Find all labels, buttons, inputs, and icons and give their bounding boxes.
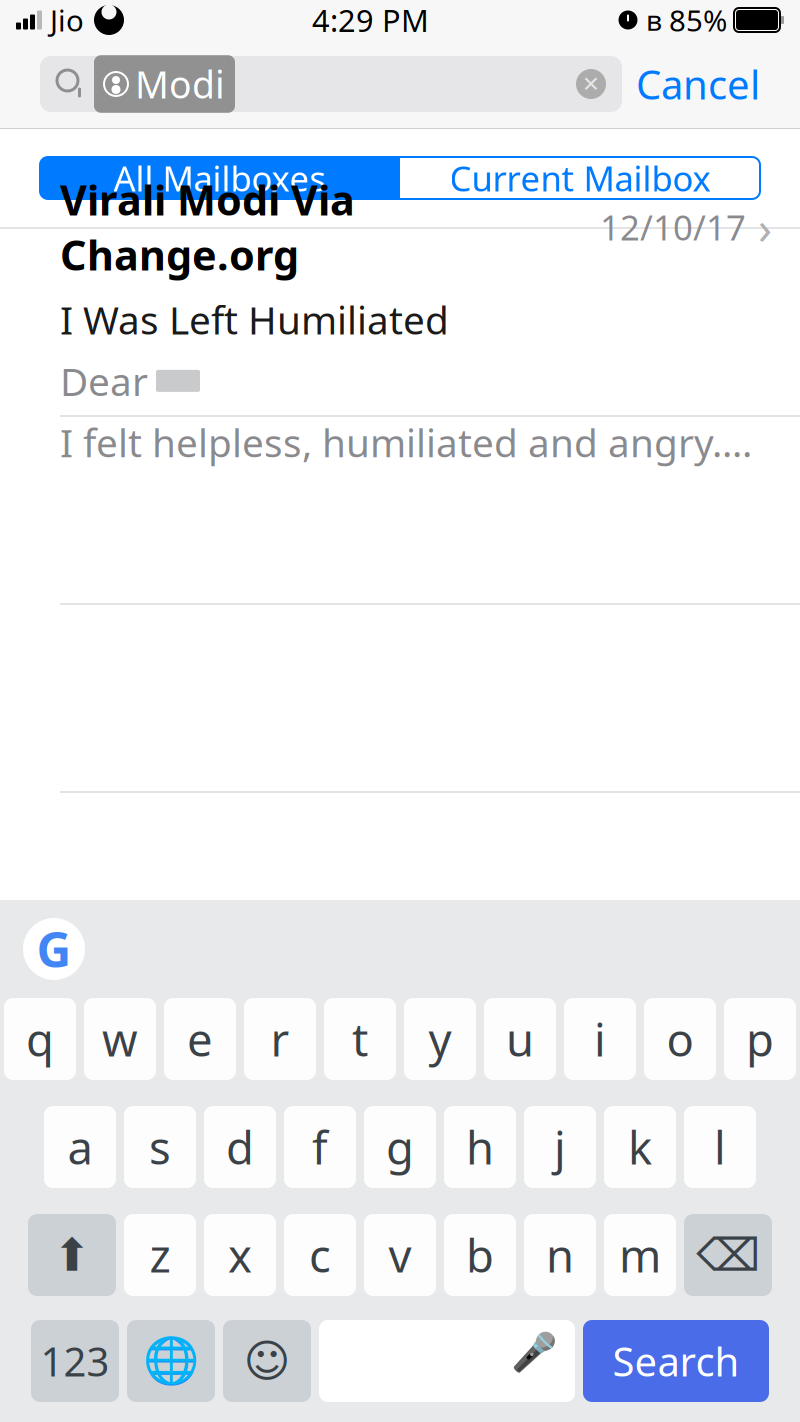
staticText: 4:29 PM <box>312 0 429 40</box>
staticText: i <box>594 1009 606 1069</box>
staticText: 🎤 <box>511 1331 557 1373</box>
staticText: n <box>546 1225 574 1285</box>
staticText: › <box>758 197 772 257</box>
button[interactable]: Emoji <box>223 1320 311 1402</box>
button[interactable]: Shift <box>28 1214 116 1296</box>
button[interactable]: k <box>604 1106 676 1188</box>
button[interactable]: i <box>564 998 636 1080</box>
button[interactable]: c <box>284 1214 356 1296</box>
button[interactable]: p <box>724 998 796 1080</box>
staticText: v <box>388 1225 411 1285</box>
staticText: All Mailboxes <box>113 155 326 201</box>
button[interactable]: h <box>444 1106 516 1188</box>
button[interactable]: Cancel <box>622 56 774 112</box>
staticText: k <box>628 1117 652 1177</box>
staticText: d <box>226 1117 254 1177</box>
staticText: l <box>714 1117 726 1177</box>
staticText: y <box>428 1009 451 1069</box>
staticText: z <box>149 1225 170 1285</box>
button[interactable]: z <box>124 1214 196 1296</box>
staticText: Dear <box>60 355 148 406</box>
staticText: ʙ <box>646 1 662 39</box>
button[interactable]: v <box>364 1214 436 1296</box>
staticText: m <box>619 1225 661 1285</box>
staticText: q <box>26 1009 54 1069</box>
staticText: w <box>102 1009 138 1069</box>
button[interactable]: d <box>204 1106 276 1188</box>
button[interactable]: o <box>644 998 716 1080</box>
button[interactable]: l <box>684 1106 756 1188</box>
staticText: 85% <box>669 0 727 39</box>
staticText: G <box>36 917 71 981</box>
button[interactable]: q <box>4 998 76 1080</box>
staticText: o <box>666 1009 693 1069</box>
button[interactable]: y <box>404 998 476 1080</box>
staticText: Cancel <box>636 57 760 110</box>
button[interactable]: t <box>324 998 396 1080</box>
staticText: 123 <box>40 1334 109 1387</box>
staticText: x <box>228 1225 252 1285</box>
button[interactable]: g <box>364 1106 436 1188</box>
staticText: ☺ <box>243 1335 290 1387</box>
button[interactable]: Search <box>583 1320 769 1402</box>
staticText: ⌫ <box>696 1229 760 1281</box>
button[interactable]: b <box>444 1214 516 1296</box>
staticText: f <box>312 1117 328 1177</box>
button[interactable]: Current Mailbox <box>400 157 760 199</box>
staticText: Jio <box>50 0 84 39</box>
button[interactable]: 123 <box>31 1320 119 1402</box>
staticText: I felt helpless, humiliated and angry...… <box>60 417 752 468</box>
staticText: ⬆ <box>53 1229 91 1281</box>
staticText: Search <box>612 1334 739 1387</box>
button[interactable]: Backspace <box>684 1214 772 1296</box>
staticText: ✕ <box>582 72 600 96</box>
staticText: h <box>466 1117 494 1177</box>
staticText: Current Mailbox <box>449 155 710 201</box>
staticText: b <box>466 1225 494 1285</box>
button[interactable]: Google keyboard options <box>19 914 89 984</box>
button[interactable]: f <box>284 1106 356 1188</box>
staticText: a <box>67 1117 92 1177</box>
staticText: 12/10/17 <box>600 204 746 250</box>
staticText: s <box>149 1117 171 1177</box>
button[interactable]: x <box>204 1214 276 1296</box>
button[interactable]: All Mailboxes <box>40 157 400 199</box>
staticText: Virali Modi Via Change.org <box>60 172 355 282</box>
button[interactable]: Space <box>319 1320 575 1402</box>
staticText: g <box>386 1117 414 1177</box>
staticText: c <box>309 1225 331 1285</box>
button[interactable]: e <box>164 998 236 1080</box>
staticText: j <box>554 1117 566 1177</box>
button[interactable]: s <box>124 1106 196 1188</box>
staticText: Modi <box>135 59 225 109</box>
staticText: 🌐 <box>143 1335 199 1387</box>
button[interactable]: Virali Modi Via Change.org <box>0 229 800 415</box>
staticText: e <box>187 1009 213 1069</box>
staticText: I Was Left Humiliated <box>60 294 449 345</box>
button[interactable]: w <box>84 998 156 1080</box>
button[interactable]: r <box>244 998 316 1080</box>
staticText: u <box>506 1009 534 1069</box>
button[interactable]: j <box>524 1106 596 1188</box>
button[interactable]: u <box>484 998 556 1080</box>
button[interactable]: n <box>524 1214 596 1296</box>
staticText: t <box>352 1009 368 1069</box>
button[interactable]: Clear search <box>568 61 614 107</box>
button[interactable]: m <box>604 1214 676 1296</box>
button[interactable]: Change keyboard <box>127 1320 215 1402</box>
staticText: p <box>746 1009 774 1069</box>
button[interactable]: a <box>44 1106 116 1188</box>
staticText: r <box>270 1009 289 1069</box>
